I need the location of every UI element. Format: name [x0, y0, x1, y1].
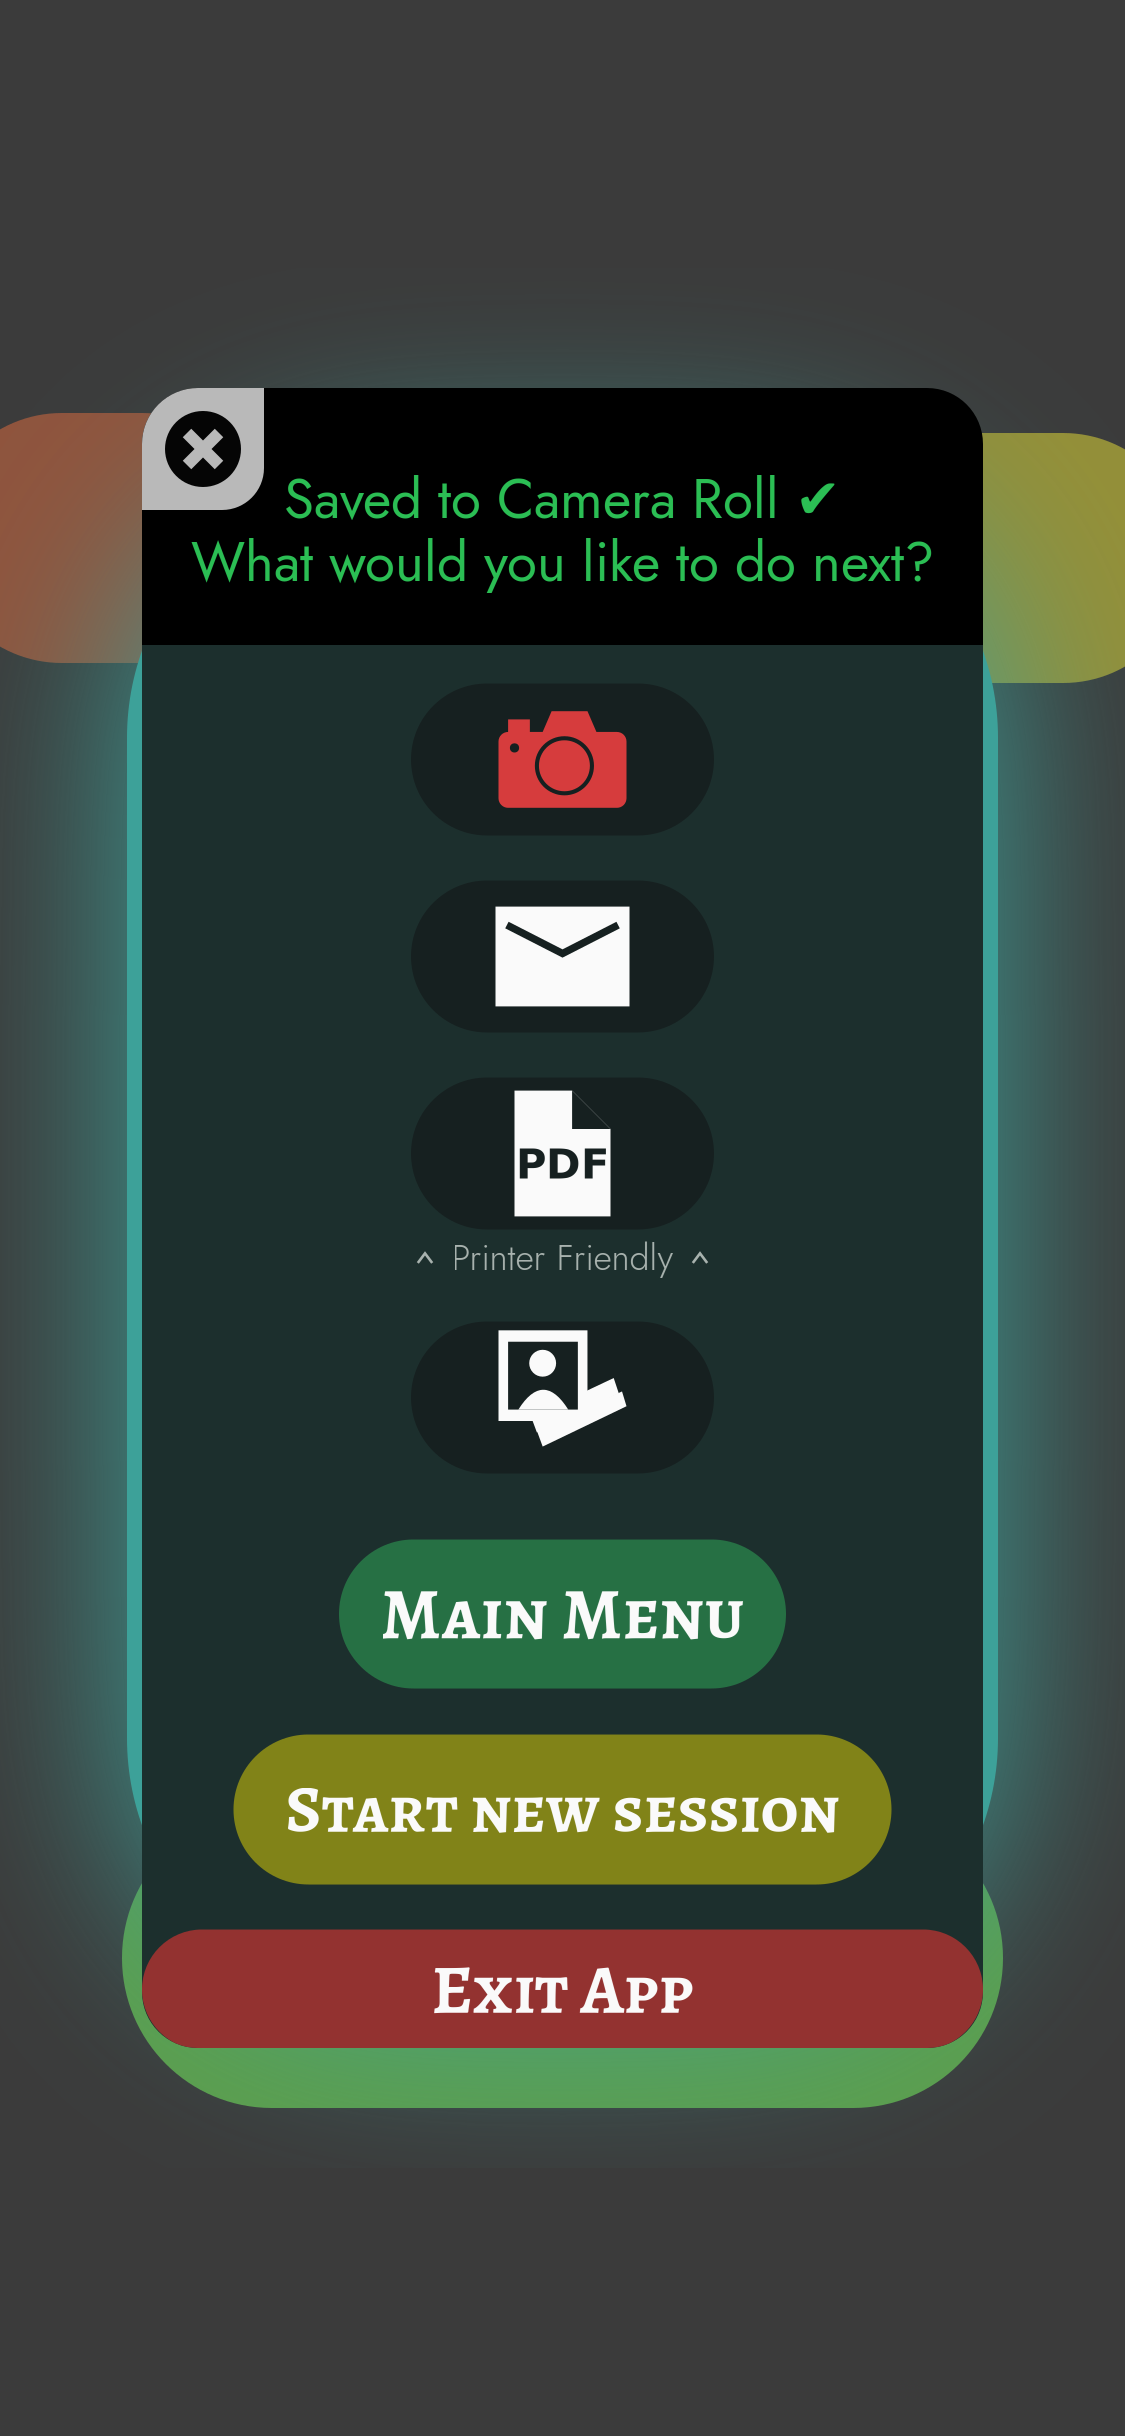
staticText: Printer Friendly — [451, 1231, 673, 1283]
button[interactable]: Start new session — [233, 1734, 891, 1884]
button[interactable]: Photo gallery — [411, 1321, 714, 1473]
button[interactable]: Email — [411, 880, 714, 1032]
staticText: Exit App — [431, 1942, 693, 2037]
button[interactable]: Close — [142, 388, 264, 510]
button[interactable]: Save as PDF — [411, 1077, 714, 1229]
button[interactable]: Take another photo — [411, 683, 714, 835]
button[interactable]: Exit App — [142, 1929, 983, 2049]
staticText: Main Menu — [380, 1565, 744, 1663]
button[interactable]: Main Menu — [339, 1539, 786, 1688]
staticText: Saved to Camera Roll ✔ — [284, 459, 841, 538]
staticText: PDF — [516, 1140, 609, 1188]
staticText: Start new session — [285, 1764, 839, 1855]
staticText: What would you like to do next? — [191, 522, 934, 601]
